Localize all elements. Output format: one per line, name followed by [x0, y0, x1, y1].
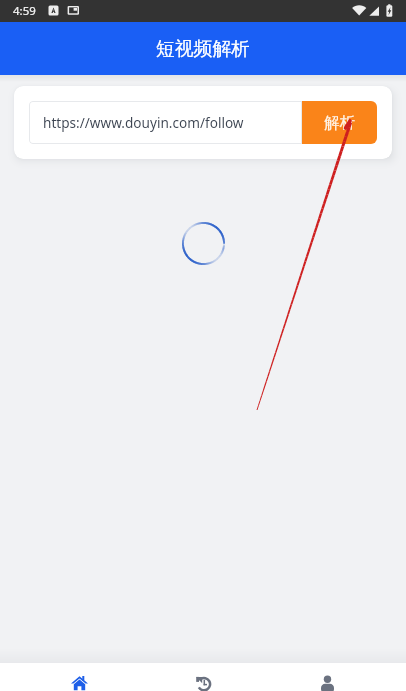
staticText: 解析: [324, 113, 356, 133]
button[interactable]: Profile: [307, 663, 347, 691]
button[interactable]: 解析: [302, 101, 377, 144]
button[interactable]: https://www.douyin.com/follow: [29, 101, 302, 144]
staticText: 短视频解析: [156, 37, 250, 61]
staticText: https://www.douyin.com/follow: [43, 113, 244, 132]
button[interactable]: History: [183, 663, 223, 691]
staticText: 4:59: [13, 3, 36, 19]
button[interactable]: Home: [59, 663, 99, 691]
